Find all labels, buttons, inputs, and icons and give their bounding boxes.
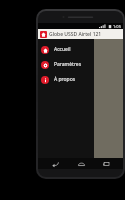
button[interactable]: Paramètres <box>38 57 94 72</box>
other: À propos <box>43 78 48 83</box>
button[interactable]: Back <box>46 158 64 169</box>
button[interactable]: Recent apps <box>97 158 115 169</box>
staticText: 1:05 <box>113 24 121 29</box>
staticText: Paramètres <box>54 61 82 68</box>
button[interactable]: À propos <box>38 72 94 87</box>
staticText: Accueil <box>54 46 71 53</box>
staticText: Globe USSD Airtel 121 <box>49 31 102 38</box>
other: Accueil <box>43 48 48 53</box>
button[interactable]: Globe USSD Airtel 121 <box>38 29 123 39</box>
button[interactable]: Home <box>72 158 90 169</box>
button[interactable]: Accueil <box>38 42 94 57</box>
other: Paramètres <box>43 63 48 68</box>
staticText: À propos <box>54 76 76 83</box>
